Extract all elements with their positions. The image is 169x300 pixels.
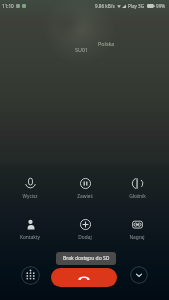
staticText: Wycisz [22, 193, 38, 200]
staticText: 9.86 kB/s [95, 3, 115, 9]
button[interactable]: Kontakty [8, 216, 52, 241]
staticText: Zawieś [77, 193, 93, 200]
button[interactable]: Dodaj [63, 216, 107, 241]
staticText: Brak dostępu do SD [63, 255, 110, 262]
button[interactable]: Głośnik [115, 175, 159, 200]
staticText: Polska [98, 40, 115, 47]
button[interactable]: Klawiatura [21, 266, 40, 285]
button[interactable]: Wycisz [8, 175, 52, 200]
staticText: Dodaj [78, 234, 92, 241]
staticText: 11:10 [2, 3, 14, 9]
staticText: 99% [156, 3, 166, 9]
button[interactable]: Nagraj [115, 216, 159, 241]
button[interactable]: Zwiń [130, 266, 148, 284]
button[interactable]: Zakończ połączenie [51, 268, 117, 287]
staticText: Play 3G [128, 3, 145, 9]
staticText: SU01 [75, 46, 89, 53]
button[interactable]: Zawieś [63, 175, 107, 200]
staticText: Kontakty [20, 234, 40, 241]
staticText: Nagraj [129, 234, 145, 241]
staticText: Głośnik [129, 193, 146, 200]
